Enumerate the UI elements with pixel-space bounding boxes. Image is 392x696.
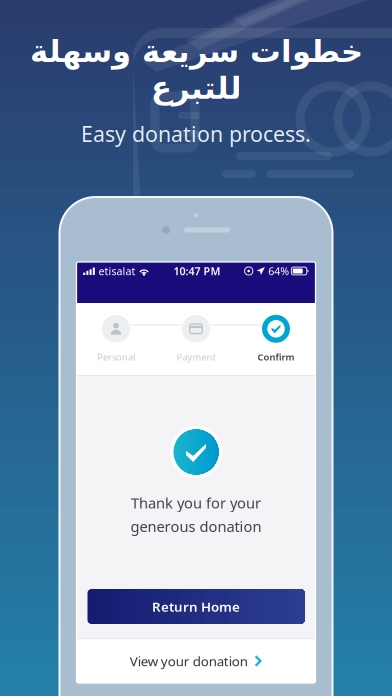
staticText: خطوات سريعة وسهلة — [29, 34, 362, 69]
staticText: Return Home — [152, 598, 240, 615]
button[interactable]: Return Home — [87, 589, 304, 624]
staticText: للتبرع — [150, 71, 241, 106]
staticText: Easy donation process. — [81, 120, 311, 148]
staticText: generous donation — [130, 516, 261, 536]
button[interactable]: View your donation — [76, 639, 315, 683]
staticText: etisalat — [98, 264, 135, 278]
staticText: 10:47 PM — [174, 264, 221, 278]
staticText: View your donation — [130, 652, 248, 670]
staticText: Personal — [97, 351, 135, 363]
staticText: Thank you for your — [131, 493, 261, 512]
staticText: Payment — [176, 351, 215, 363]
staticText: 64% — [268, 264, 289, 278]
staticText: Confirm — [257, 351, 294, 363]
